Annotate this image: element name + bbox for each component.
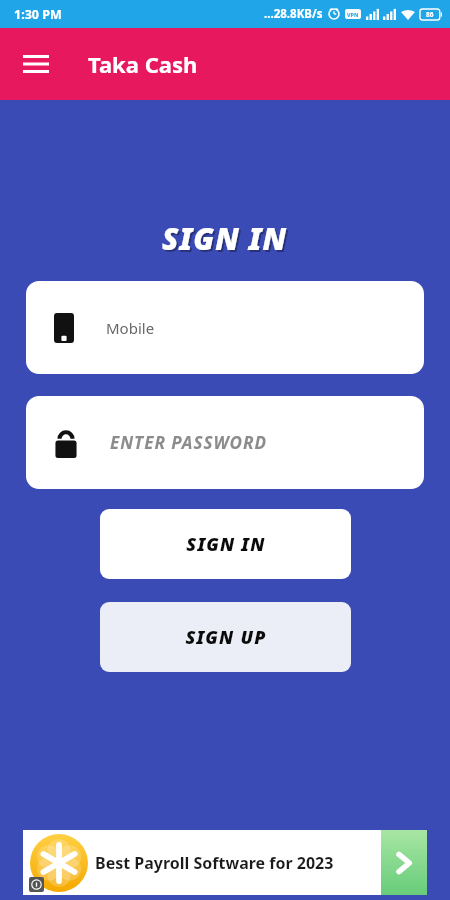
staticText: Taka Cash [88, 49, 198, 79]
button[interactable]: ENTER PASSWORD [26, 396, 424, 489]
button[interactable]: SIGN UP [100, 602, 351, 672]
staticText: ...28.8KB/s [264, 6, 323, 22]
staticText: 86 [426, 10, 434, 19]
staticText: Mobile [106, 318, 155, 338]
staticText: SIGN IN [164, 220, 290, 261]
staticText: VPN [347, 11, 359, 18]
button[interactable]: Mobile [26, 281, 424, 374]
staticText: SIGN IN [186, 532, 266, 557]
button[interactable]: Best Payroll Software for 2023 [23, 830, 427, 895]
button[interactable]: Open navigation menu [12, 40, 60, 88]
staticText: SIGN UP [185, 625, 267, 650]
staticText: 1:30 PM [14, 6, 62, 23]
staticText: ENTER PASSWORD [110, 431, 268, 454]
button[interactable]: Open advertisement [381, 830, 427, 895]
staticText: SIGN IN [162, 218, 288, 259]
staticText: Best Payroll Software for 2023 [95, 852, 334, 874]
button[interactable]: SIGN IN [100, 509, 351, 579]
